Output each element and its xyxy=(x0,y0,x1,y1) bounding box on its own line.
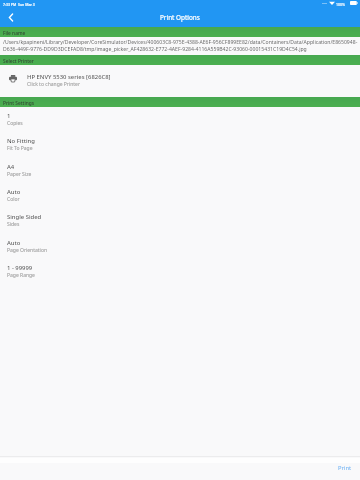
staticText: 100% xyxy=(336,2,345,7)
staticText: Page Orientation xyxy=(7,247,48,254)
staticText: No Fitting xyxy=(7,137,35,145)
staticText: Page Range xyxy=(7,272,35,279)
staticText: Color xyxy=(7,196,20,203)
button[interactable]: A4 xyxy=(0,158,360,183)
staticText: Select Printer xyxy=(3,58,34,65)
staticText: Sides xyxy=(7,221,20,228)
staticText: Paper Size xyxy=(7,171,32,178)
staticText: Fit To Page xyxy=(7,145,33,152)
button[interactable]: 1 xyxy=(0,107,360,132)
staticText: Single Sided xyxy=(7,213,42,221)
staticText: Auto xyxy=(7,188,21,196)
staticText: Click to change Printer xyxy=(27,81,80,88)
staticText: 7:33 PM xyxy=(3,2,17,7)
staticText: 1 - 99999 xyxy=(7,264,33,272)
staticText: A4 xyxy=(7,163,15,171)
button[interactable]: HP ENVY 5530 series [6826C8] xyxy=(0,65,360,97)
button[interactable]: Auto xyxy=(0,183,360,208)
button[interactable]: Print xyxy=(328,456,360,480)
staticText: Print Options xyxy=(160,13,200,22)
staticText: Copies xyxy=(7,120,23,127)
button[interactable]: No Fitting xyxy=(0,132,360,157)
button[interactable]: Single Sided xyxy=(0,208,360,233)
button[interactable]: Auto xyxy=(0,234,360,259)
staticText: Auto xyxy=(7,239,21,247)
staticText: /Users/kpapineni/Library/Developer/CoreS… xyxy=(3,39,360,53)
staticText: Print xyxy=(338,464,352,472)
staticText: HP ENVY 5530 series [6826C8] xyxy=(27,73,111,81)
button[interactable]: 1 - 99999 xyxy=(0,259,360,284)
staticText: File name xyxy=(3,30,26,37)
staticText: Sun Mar 3 xyxy=(18,2,35,7)
staticText: 1 xyxy=(7,112,11,120)
staticText: Print Settings xyxy=(3,100,35,107)
button[interactable]: Back xyxy=(0,8,21,27)
